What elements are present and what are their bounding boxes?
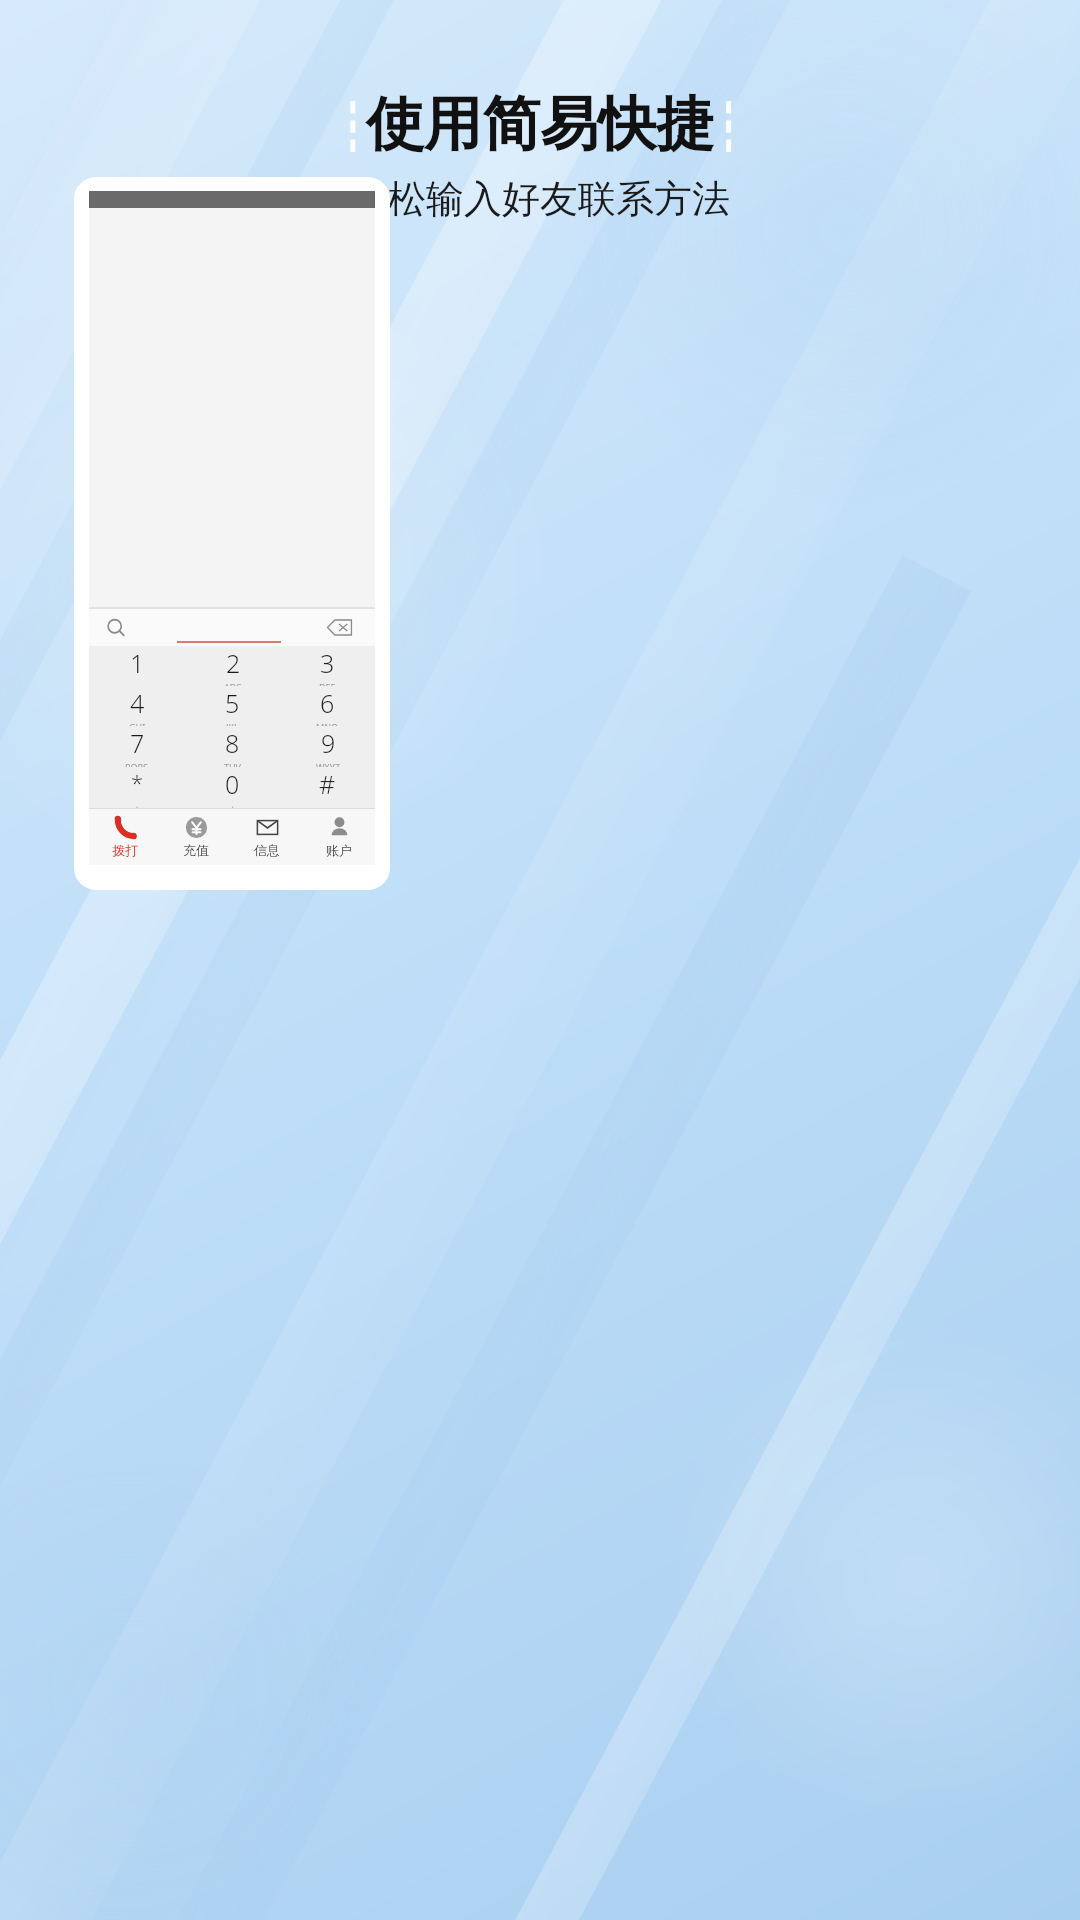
staticText: 轻松输入好友联系方法 — [350, 175, 730, 223]
staticText: 7 — [130, 726, 145, 760]
staticText: 充值 — [183, 842, 209, 858]
button[interactable]: 4 — [89, 686, 185, 726]
staticText: MNO — [316, 721, 339, 726]
staticText: 4 — [130, 686, 145, 720]
staticText: # — [319, 767, 336, 801]
staticText: , — [136, 798, 139, 808]
button[interactable]: # — [280, 767, 375, 808]
button[interactable]: 3 — [280, 646, 375, 686]
staticText: PQRS — [125, 761, 149, 767]
staticText: 账户 — [326, 842, 352, 858]
staticText: 5 — [225, 686, 240, 720]
button[interactable]: Search — [89, 609, 375, 646]
staticText: + — [230, 802, 236, 808]
button[interactable]: 5 — [185, 686, 280, 726]
staticText: 0 — [225, 767, 240, 801]
button[interactable]: 6 — [280, 686, 375, 726]
button[interactable]: 2 — [185, 646, 280, 686]
button[interactable]: Backspace — [327, 619, 353, 636]
staticText: TUV — [224, 761, 241, 767]
button[interactable]: 充值 — [160, 809, 231, 865]
staticText: 8 — [225, 726, 240, 760]
staticText: ABC — [224, 681, 242, 686]
button[interactable]: 8 — [185, 726, 280, 767]
staticText: DEF — [319, 681, 336, 686]
staticText: 拨打 — [112, 842, 138, 858]
button[interactable]: 7 — [89, 726, 185, 767]
staticText: JKL — [226, 721, 239, 726]
button[interactable]: 0 — [185, 767, 280, 808]
button[interactable]: 1 — [89, 646, 185, 686]
staticText: 9 — [321, 726, 336, 760]
button[interactable]: Search — [105, 617, 127, 639]
button[interactable]: 拨打 — [89, 809, 160, 865]
staticText: 信息 — [254, 842, 280, 858]
button[interactable]: 信息 — [231, 809, 303, 865]
staticText: * — [131, 767, 144, 797]
button[interactable]: 9 — [280, 726, 375, 767]
staticText: WXYZ — [316, 761, 340, 767]
staticText: GHI — [129, 721, 146, 726]
staticText: 6 — [320, 686, 335, 720]
staticText: 使用简易快捷 — [366, 88, 714, 161]
staticText: 3 — [320, 646, 335, 680]
staticText: 2 — [226, 646, 241, 680]
staticText: 1 — [130, 646, 145, 680]
button[interactable]: * — [89, 767, 185, 808]
button[interactable]: 账户 — [303, 809, 375, 865]
